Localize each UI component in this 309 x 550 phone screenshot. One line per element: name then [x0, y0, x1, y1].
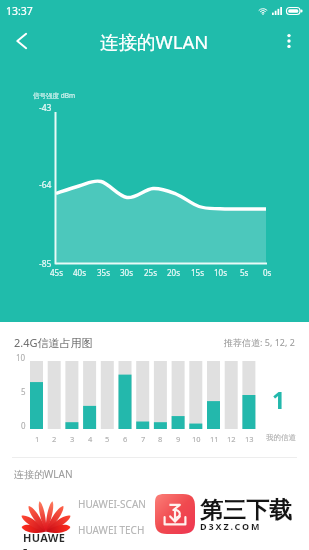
- staticText: HUAWEI: [23, 530, 69, 550]
- staticText: 9: [176, 434, 181, 444]
- staticText: 0s: [263, 267, 272, 278]
- staticText: D3XZ.COM: [200, 520, 262, 532]
- staticText: 我的信道: [266, 433, 296, 442]
- staticText: 4: [88, 434, 93, 444]
- staticText: 0: [21, 420, 26, 431]
- staticText: 10: [16, 352, 26, 363]
- staticText: HUAWEI-SCAN: [78, 497, 146, 511]
- staticText: 推荐信道: 5, 12, 2: [224, 336, 295, 348]
- staticText: 8: [158, 434, 163, 444]
- staticText: 35s: [97, 267, 110, 278]
- staticText: 13:37: [6, 4, 33, 18]
- staticText: 2: [52, 434, 57, 444]
- staticText: 1: [35, 434, 40, 444]
- staticText: 连接的WLAN: [14, 467, 73, 481]
- staticText: 10s: [214, 267, 227, 278]
- staticText: 连接的WLAN: [100, 29, 209, 54]
- staticText: 第三下载: [200, 496, 292, 525]
- staticText: 3: [70, 434, 75, 444]
- staticText: 20s: [167, 267, 180, 278]
- button[interactable]: More options: [267, 19, 309, 63]
- button[interactable]: Back: [0, 19, 44, 63]
- staticText: 信号强度 dBm: [33, 91, 75, 100]
- staticText: 13: [245, 434, 254, 444]
- staticText: 30s: [120, 267, 133, 278]
- staticText: -64: [39, 179, 52, 191]
- button[interactable]: HUAWEI-SCAN: [0, 491, 309, 517]
- staticText: -85: [39, 258, 52, 270]
- staticText: 1: [272, 384, 286, 415]
- staticText: 15s: [191, 267, 204, 278]
- staticText: -43: [39, 102, 52, 114]
- staticText: 10: [192, 434, 201, 444]
- staticText: 5s: [240, 267, 249, 278]
- staticText: HUAWEI TECH: [78, 523, 145, 537]
- staticText: 25s: [144, 267, 157, 278]
- staticText: 7: [141, 434, 146, 444]
- button[interactable]: HUAWEI TECH: [0, 517, 309, 543]
- staticText: 6: [123, 434, 128, 444]
- staticText: 45s: [50, 267, 63, 278]
- staticText: 2.4G信道占用图: [14, 335, 93, 350]
- staticText: 5: [105, 434, 110, 444]
- staticText: 5: [21, 386, 26, 397]
- staticText: 12: [227, 434, 236, 444]
- staticText: 11: [210, 434, 219, 444]
- staticText: 40s: [73, 267, 86, 278]
